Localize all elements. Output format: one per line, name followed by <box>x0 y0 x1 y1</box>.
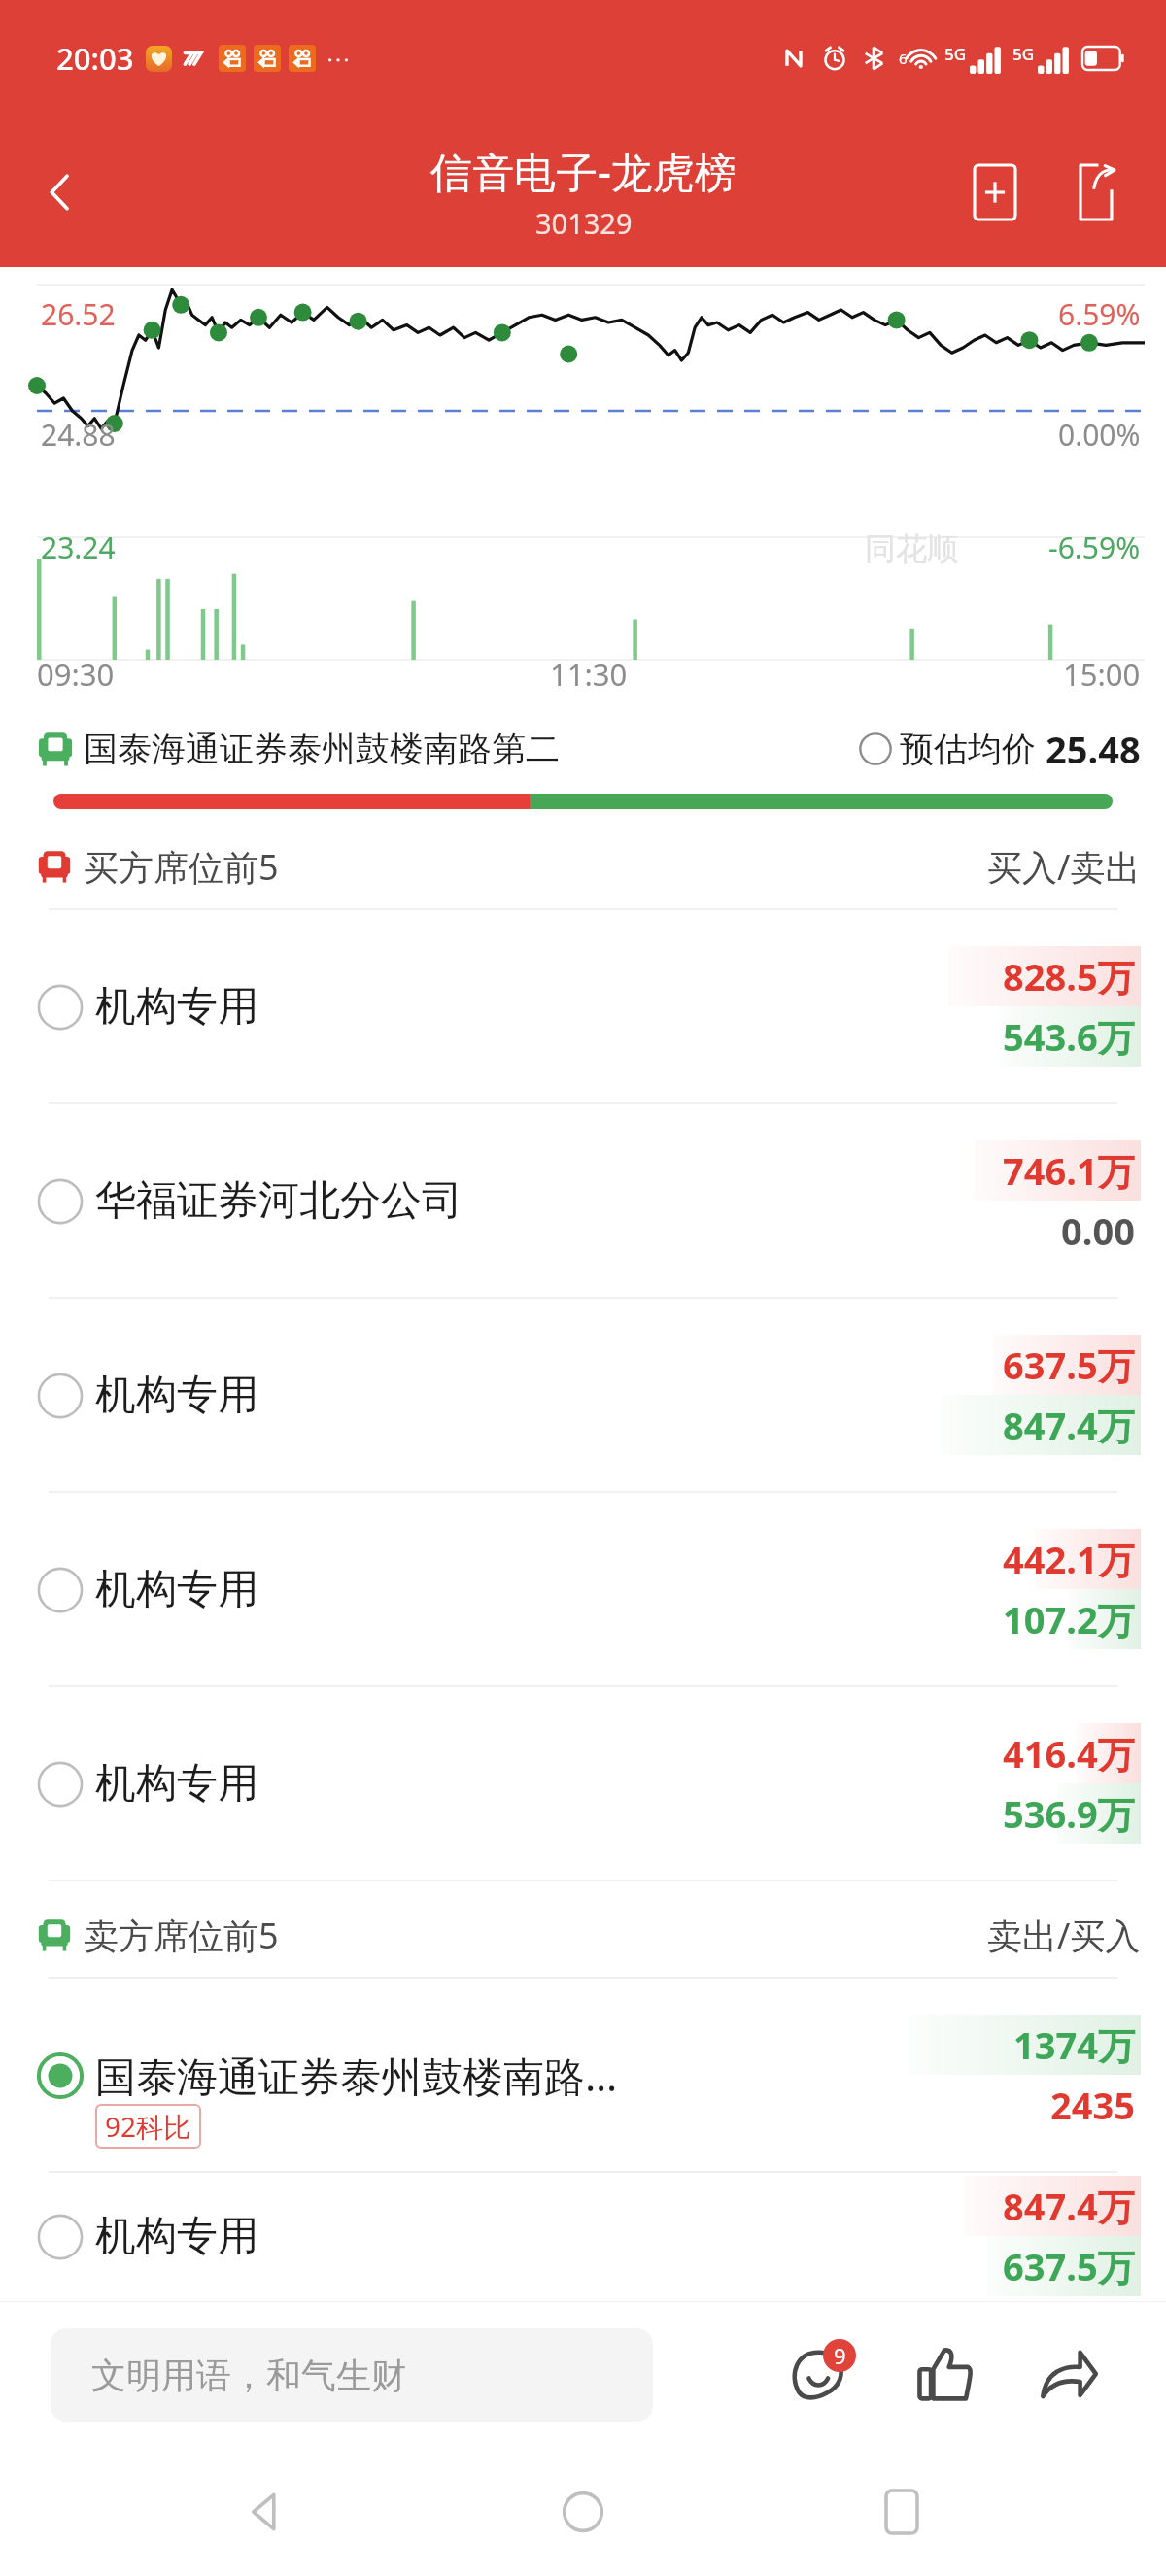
button[interactable]: Comments <box>773 2328 867 2422</box>
staticText: 847.4万 <box>1003 1400 1135 1450</box>
button[interactable]: 文明用语，和气生财 <box>51 2328 653 2422</box>
button[interactable]: Back <box>19 152 101 233</box>
staticText: 23.24 <box>41 527 116 567</box>
staticText: 416.4万 <box>1003 1728 1135 1779</box>
staticText: 637.5万 <box>1003 1339 1135 1390</box>
staticText: 卖方席位前5 <box>84 1912 279 1959</box>
button[interactable]: 机构专用 <box>0 2173 1166 2299</box>
staticText: 6.59% <box>1058 294 1141 334</box>
staticText: 847.4万 <box>1003 2181 1135 2231</box>
staticText: 5G <box>944 43 967 65</box>
staticText: 华福证券河北分公司 <box>95 1175 463 1227</box>
staticText: 25.48 <box>1046 724 1141 774</box>
staticText: 机构专用 <box>95 2211 258 2262</box>
button[interactable]: 机构专用 <box>0 1493 1166 1685</box>
button[interactable]: 国泰海通证券泰州鼓楼南路… <box>0 1979 1166 2171</box>
button[interactable]: 机构专用 <box>0 910 1166 1102</box>
staticText: 15:00 <box>1063 654 1141 695</box>
staticText: 买入/卖出 <box>987 843 1141 891</box>
button[interactable]: Share <box>1022 2328 1115 2422</box>
staticText: 92科比 <box>105 2108 191 2145</box>
button[interactable]: Share <box>1055 152 1137 233</box>
staticText: 机构专用 <box>95 981 258 1033</box>
staticText: 6 <box>899 49 908 68</box>
staticText: 637.5万 <box>1003 2241 1135 2291</box>
staticText: 9 <box>834 2341 846 2370</box>
staticText: 24.88 <box>41 415 116 455</box>
staticText: 1374万 <box>1013 2019 1135 2070</box>
button[interactable]: 国泰海通证券泰州鼓楼南路第二 <box>0 704 1166 794</box>
button[interactable]: 华福证券河北分公司 <box>0 1104 1166 1297</box>
staticText: 卖出/买入 <box>987 1912 1141 1959</box>
staticText: 0.00 <box>1061 1205 1135 1256</box>
staticText: 828.5万 <box>1003 951 1135 1001</box>
staticText: 信音电子-龙虎榜 <box>430 143 737 200</box>
button[interactable]: Home <box>530 2458 636 2565</box>
staticText: -6.59% <box>1048 527 1141 567</box>
staticText: 国泰海通证券泰州鼓楼南路第二 <box>84 728 560 770</box>
button[interactable]: 机构专用 <box>0 1687 1166 1880</box>
staticText: 机构专用 <box>95 1564 258 1615</box>
staticText: 机构专用 <box>95 1370 258 1421</box>
staticText: 20:03 <box>56 38 134 79</box>
staticText: 107.2万 <box>1003 1594 1135 1644</box>
button[interactable]: 买方席位前5 <box>0 825 1166 908</box>
staticText: 2435 <box>1050 2080 1135 2130</box>
staticText: 买方席位前5 <box>84 843 279 891</box>
staticText: 同花顺 <box>865 529 958 568</box>
staticText: 09:30 <box>37 654 115 695</box>
staticText: 5G <box>1012 43 1035 65</box>
button[interactable]: 机构专用 <box>0 1299 1166 1491</box>
staticText: 11:30 <box>550 654 628 695</box>
button[interactable]: Add to watchlist <box>954 152 1036 233</box>
staticText: 746.1万 <box>1003 1145 1135 1196</box>
button[interactable]: Recent apps <box>848 2458 955 2565</box>
staticText: 机构专用 <box>95 1758 258 1810</box>
staticText: 301329 <box>535 204 633 242</box>
staticText: 543.6万 <box>1003 1011 1135 1062</box>
button[interactable]: 卖方席位前5 <box>0 1893 1166 1977</box>
staticText: 预估均价 <box>900 728 1036 770</box>
button[interactable]: Like <box>898 2328 991 2422</box>
staticText: 国泰海通证券泰州鼓楼南路… <box>95 2048 618 2103</box>
staticText: 0.00% <box>1058 415 1141 455</box>
staticText: 536.9万 <box>1003 1788 1135 1839</box>
staticText: 文明用语，和气生财 <box>91 2354 406 2397</box>
staticText: 442.1万 <box>1003 1534 1135 1584</box>
button[interactable]: Back <box>212 2458 319 2565</box>
staticText: 26.52 <box>41 294 116 334</box>
